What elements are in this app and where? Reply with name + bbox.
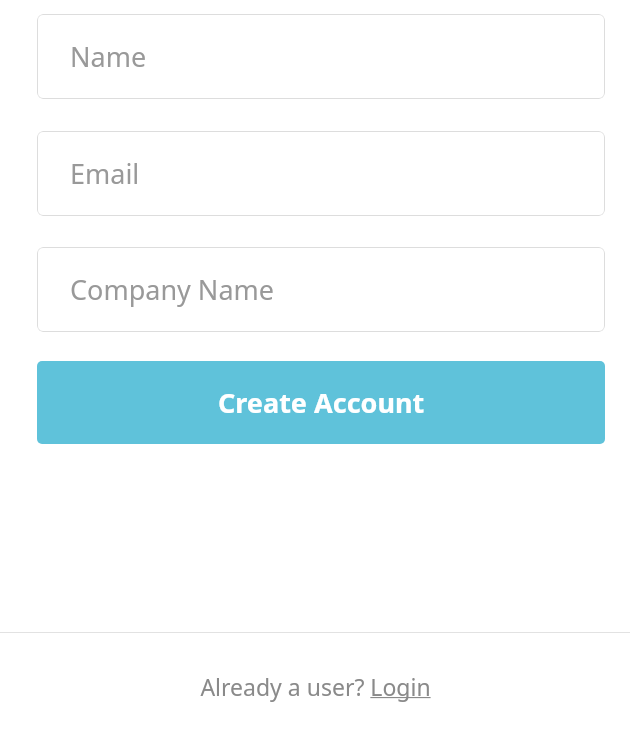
- button[interactable]: Email: [37, 131, 605, 216]
- staticText: Already a user? Login: [200, 671, 431, 702]
- button[interactable]: Already a user? Login: [0, 660, 630, 712]
- button[interactable]: Create Account: [37, 361, 605, 444]
- staticText: Create Account: [218, 384, 425, 421]
- button[interactable]: Company Name: [37, 247, 605, 332]
- staticText: Company Name: [70, 271, 275, 308]
- staticText: Email: [70, 155, 140, 192]
- button[interactable]: Name: [37, 14, 605, 99]
- staticText: Name: [70, 38, 147, 75]
